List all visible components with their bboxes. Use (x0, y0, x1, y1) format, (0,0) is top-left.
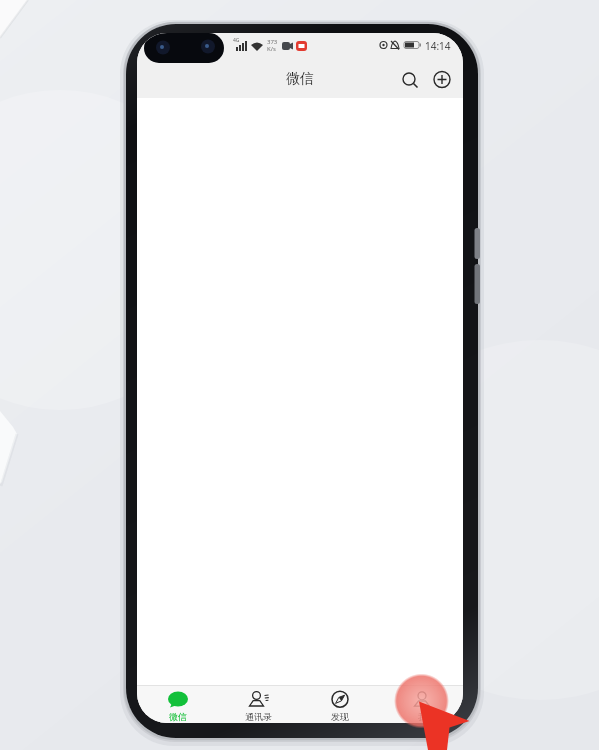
staticText: K/s (267, 45, 276, 53)
staticText: 我 (418, 711, 427, 722)
staticText: 发现 (331, 711, 349, 722)
button[interactable]: 我 (381, 686, 463, 723)
button[interactable]: 微信 (137, 686, 218, 723)
staticText: 通讯录 (245, 711, 272, 722)
staticText: 373 (267, 38, 278, 46)
button[interactable]: 发现 (299, 686, 381, 723)
staticText: 4G (233, 37, 240, 44)
button[interactable]: 通讯录 (218, 686, 299, 723)
staticText: 14:14 (425, 39, 451, 53)
button[interactable] (398, 68, 422, 92)
staticText: 微信 (169, 711, 187, 722)
button[interactable] (430, 67, 454, 91)
staticText: 微信 (286, 70, 314, 88)
